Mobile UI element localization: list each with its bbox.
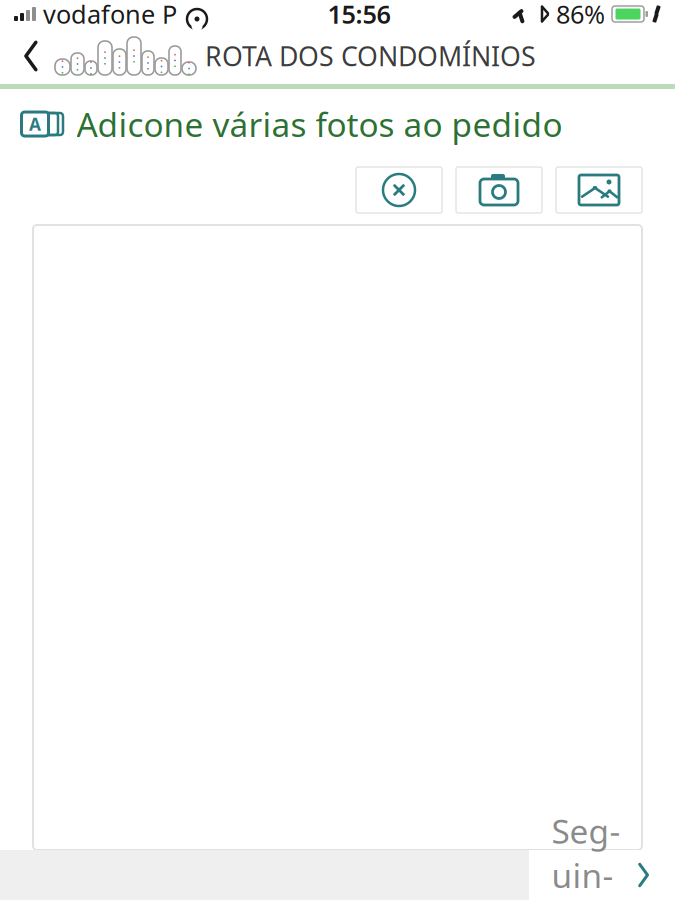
- staticText: 86%: [556, 0, 605, 31]
- staticText: A: [29, 112, 41, 135]
- button[interactable]: Clear photos: [356, 167, 442, 213]
- button[interactable]: Take photo: [456, 167, 542, 213]
- staticText: ROTA DOS CONDOMÍNIOS: [205, 38, 536, 74]
- staticText: Adicone várias fotos ao pedido: [76, 102, 562, 146]
- button[interactable]: Seguinte: [529, 850, 675, 900]
- staticText: Seguinte: [551, 809, 620, 900]
- button[interactable]: Choose from gallery: [556, 167, 642, 213]
- button[interactable]: Back: [8, 28, 54, 84]
- staticText: vodafone P: [43, 0, 177, 31]
- staticText: 15:56: [327, 0, 390, 31]
